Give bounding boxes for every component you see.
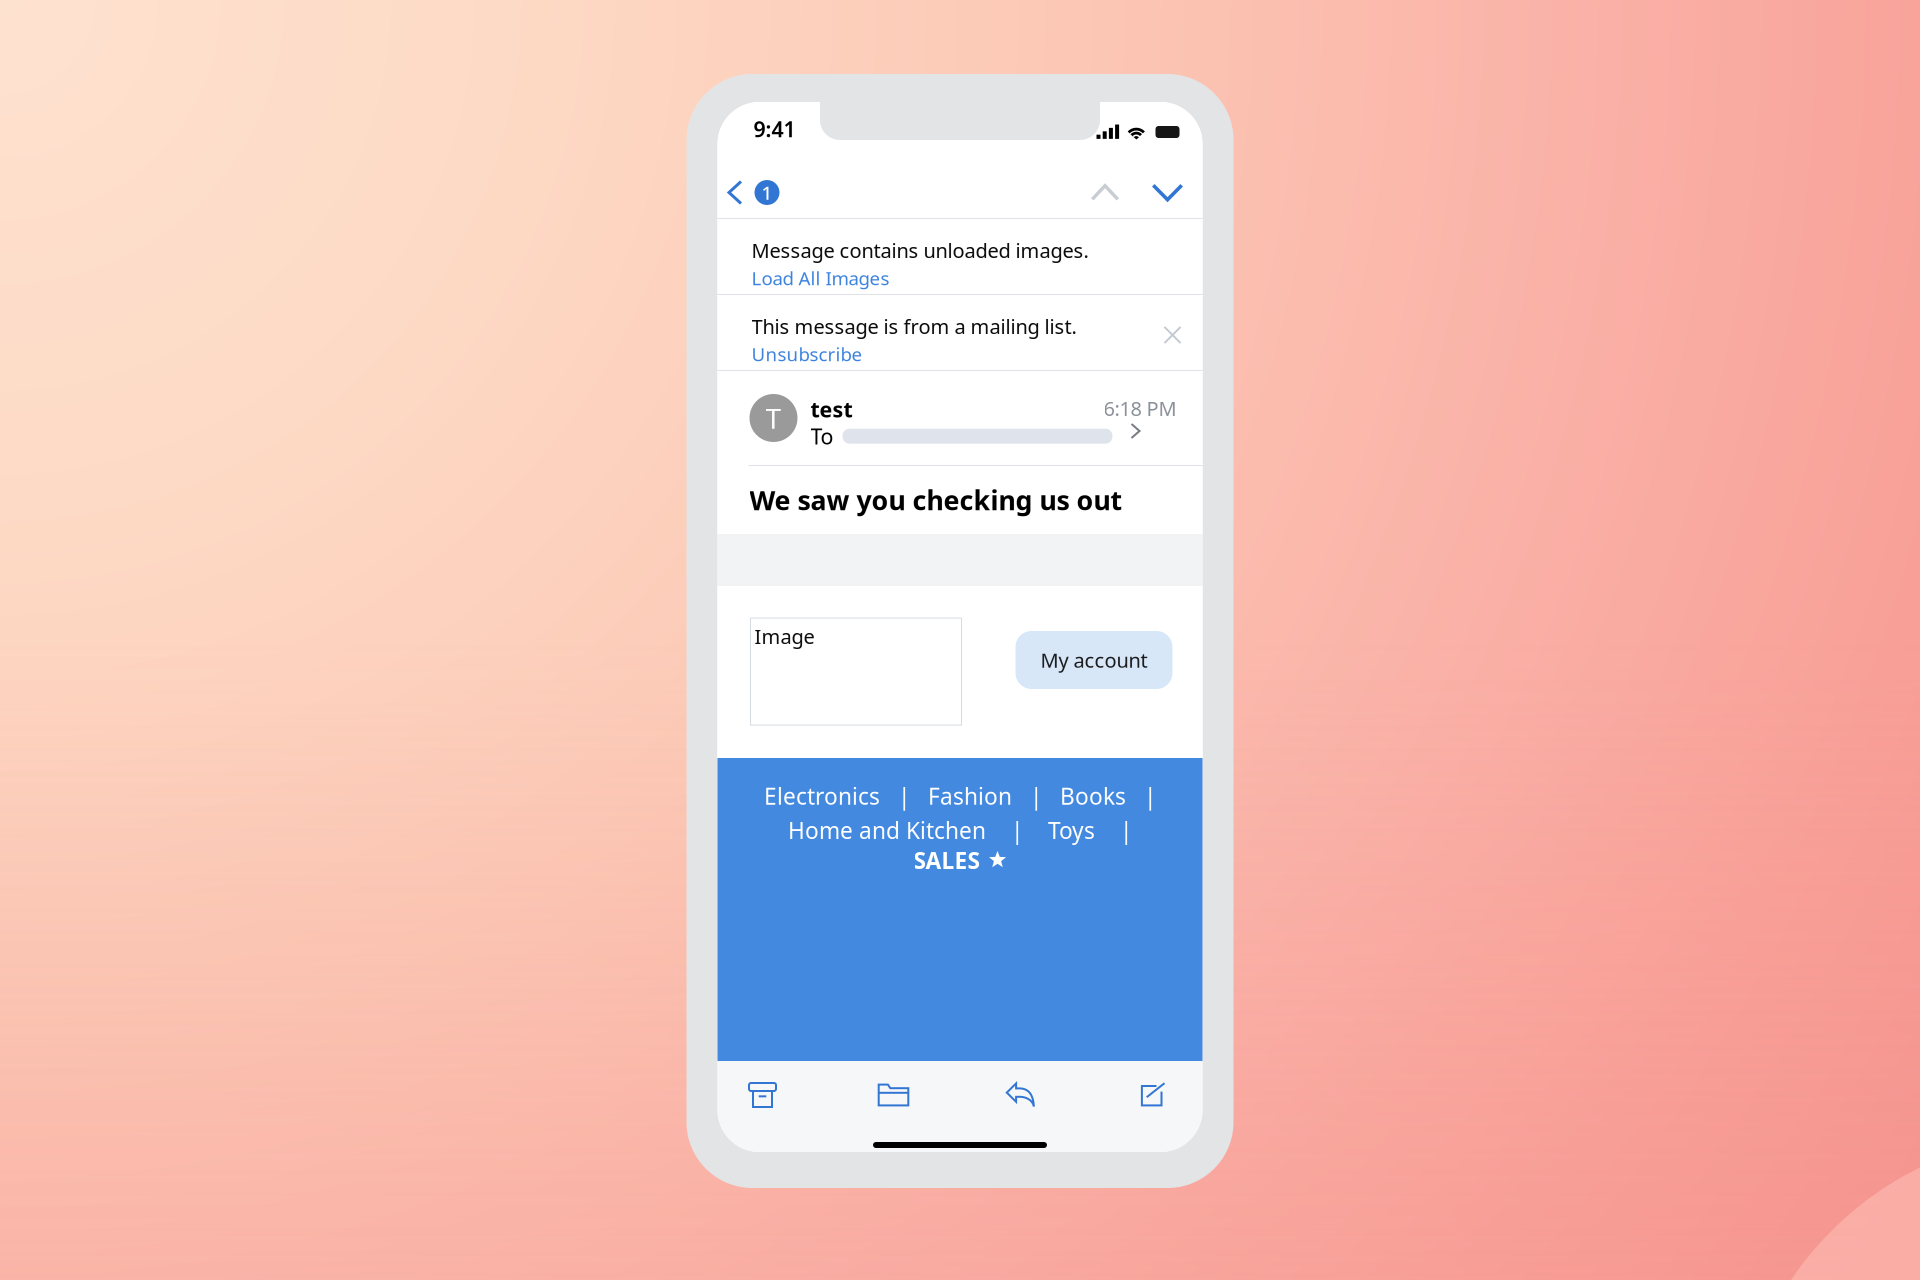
button[interactable]: Move to Folder (864, 1070, 922, 1114)
button[interactable]: Fashion (928, 781, 1012, 811)
staticText: test (810, 395, 852, 423)
staticText: 1 (761, 180, 772, 205)
button[interactable]: 1 (717, 175, 787, 210)
button[interactable]: Archive (733, 1070, 791, 1114)
staticText: SALES (913, 845, 979, 875)
staticText: T (765, 399, 781, 437)
button[interactable]: Next Message (1138, 174, 1196, 210)
button[interactable]: Books (1060, 781, 1126, 811)
staticText: Home and Kitchen (788, 815, 986, 845)
staticText: | (1030, 781, 1042, 811)
button[interactable]: Compose (1126, 1070, 1184, 1114)
staticText: My account (1040, 647, 1147, 673)
button[interactable]: Previous Message (1077, 175, 1132, 210)
staticText: | (898, 781, 910, 811)
staticText: | (1144, 781, 1156, 811)
staticText: 6:18 PM (1103, 395, 1176, 422)
staticText: Books (1060, 781, 1126, 811)
staticText: 9:41 (753, 115, 795, 143)
staticText: Fashion (928, 781, 1012, 811)
staticText: Message contains unloaded images. (751, 237, 1088, 264)
button[interactable]: SALES (913, 845, 1006, 875)
button[interactable]: Electronics (764, 781, 880, 811)
button[interactable]: Toys (1048, 815, 1095, 845)
staticText: Load All Images (751, 266, 889, 290)
button[interactable]: T (717, 371, 1202, 465)
button[interactable]: Load All Images (751, 266, 889, 290)
button[interactable]: Reply (995, 1070, 1053, 1114)
staticText: Image (754, 623, 814, 650)
staticText: This message is from a mailing list. (751, 313, 1076, 340)
button[interactable]: Unsubscribe (751, 342, 862, 366)
staticText: We saw you checking us out (749, 482, 1122, 518)
staticText: | (1011, 815, 1023, 845)
staticText: | (1120, 815, 1132, 845)
button[interactable]: Dismiss (1153, 313, 1182, 344)
staticText: To (810, 422, 833, 450)
button[interactable]: Home and Kitchen (788, 815, 986, 845)
button[interactable]: My account (1015, 631, 1172, 689)
staticText: Toys (1048, 815, 1095, 845)
staticText: Unsubscribe (751, 342, 862, 366)
staticText: Electronics (764, 781, 880, 811)
